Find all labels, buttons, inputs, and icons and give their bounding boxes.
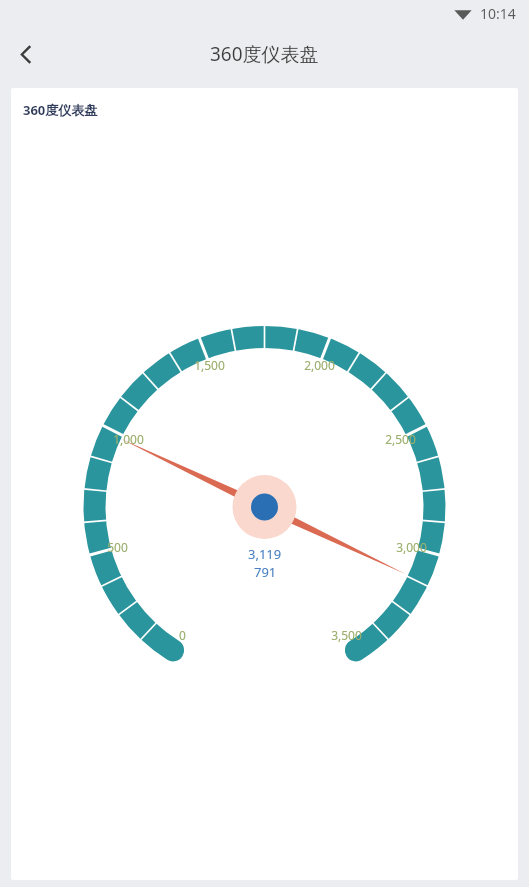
button[interactable]: Back xyxy=(0,28,52,80)
staticText: 500 xyxy=(107,539,128,555)
staticText: 10:14 xyxy=(480,4,516,23)
staticText: 360度仪表盘 xyxy=(23,101,98,119)
staticText: 1,000 xyxy=(113,431,144,447)
staticText: 3,500 xyxy=(331,627,362,643)
staticText: 3,000 xyxy=(396,539,427,555)
staticText: 2,000 xyxy=(304,357,335,373)
staticText: 3,119 xyxy=(248,545,282,563)
staticText: 791 xyxy=(254,563,277,581)
staticText: 2,500 xyxy=(385,431,416,447)
staticText: 360度仪表盘 xyxy=(210,41,319,67)
staticText: 1,500 xyxy=(194,357,225,373)
staticText: 0 xyxy=(179,627,186,643)
